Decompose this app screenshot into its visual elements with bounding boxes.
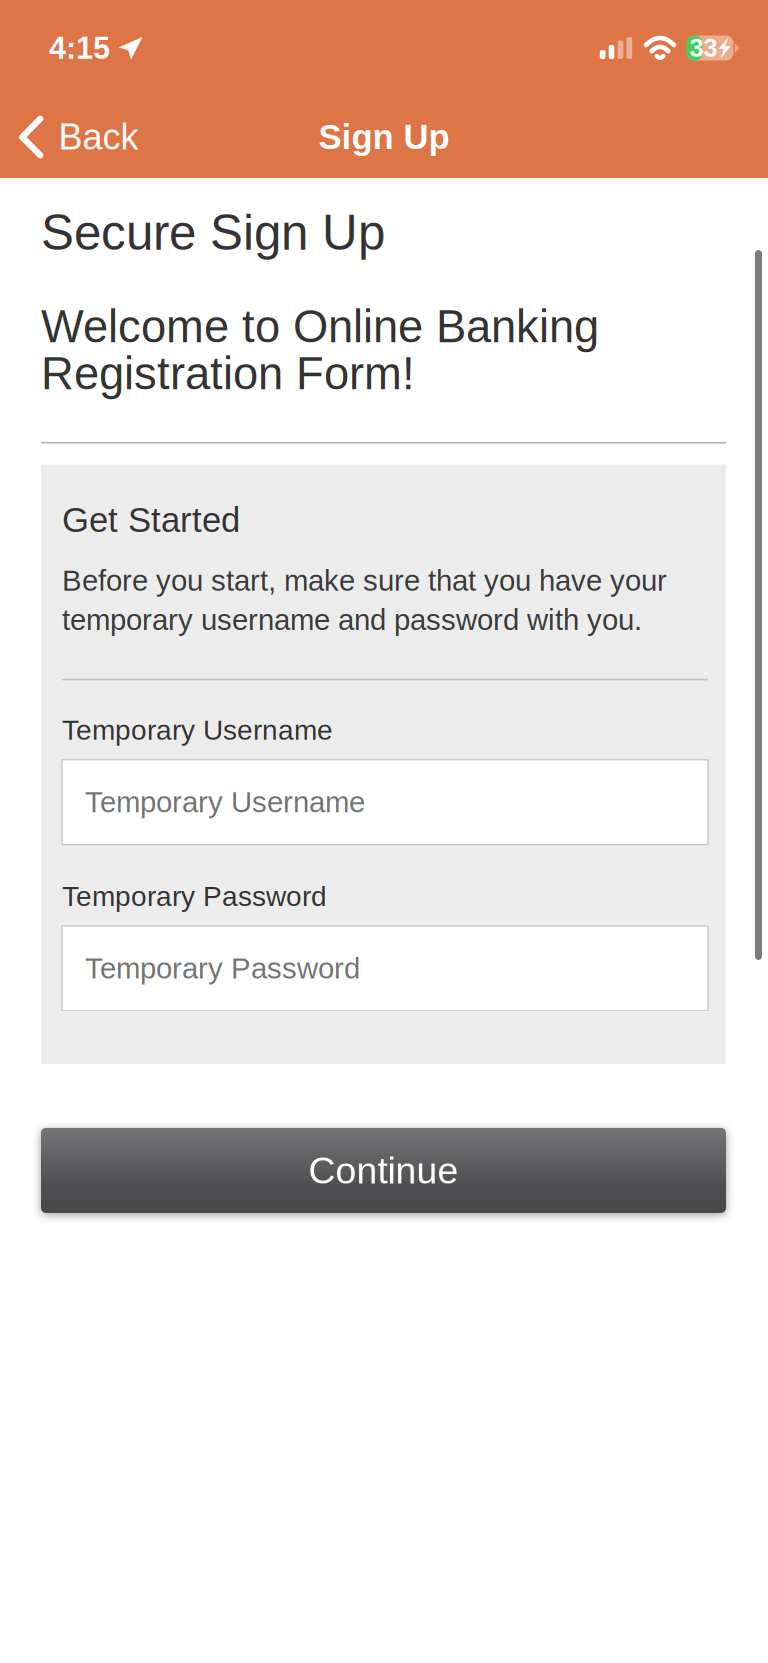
staticText: Temporary Password bbox=[62, 881, 327, 912]
staticText: Welcome to Online Banking bbox=[41, 301, 599, 352]
button[interactable]: Temporary Password bbox=[62, 926, 708, 1011]
button[interactable]: Back bbox=[0, 105, 152, 169]
staticText: Back bbox=[58, 117, 138, 157]
staticText: Continue bbox=[308, 1150, 458, 1191]
staticText: temporary username and password with you… bbox=[62, 603, 642, 636]
staticText: Get Started bbox=[62, 500, 240, 539]
staticText: 4:15 bbox=[49, 31, 110, 65]
staticText: Before you start, make sure that you hav… bbox=[62, 564, 667, 597]
staticText: Secure Sign Up bbox=[41, 205, 385, 260]
staticText: 33 bbox=[689, 34, 717, 62]
button[interactable]: Temporary Username bbox=[62, 760, 708, 845]
staticText: Temporary Password bbox=[85, 952, 360, 985]
staticText: Temporary Username bbox=[62, 714, 333, 746]
staticText: Sign Up bbox=[318, 118, 449, 156]
staticText: Registration Form! bbox=[41, 348, 415, 399]
button[interactable]: Continue bbox=[41, 1128, 726, 1213]
staticText: Temporary Username bbox=[85, 786, 365, 819]
